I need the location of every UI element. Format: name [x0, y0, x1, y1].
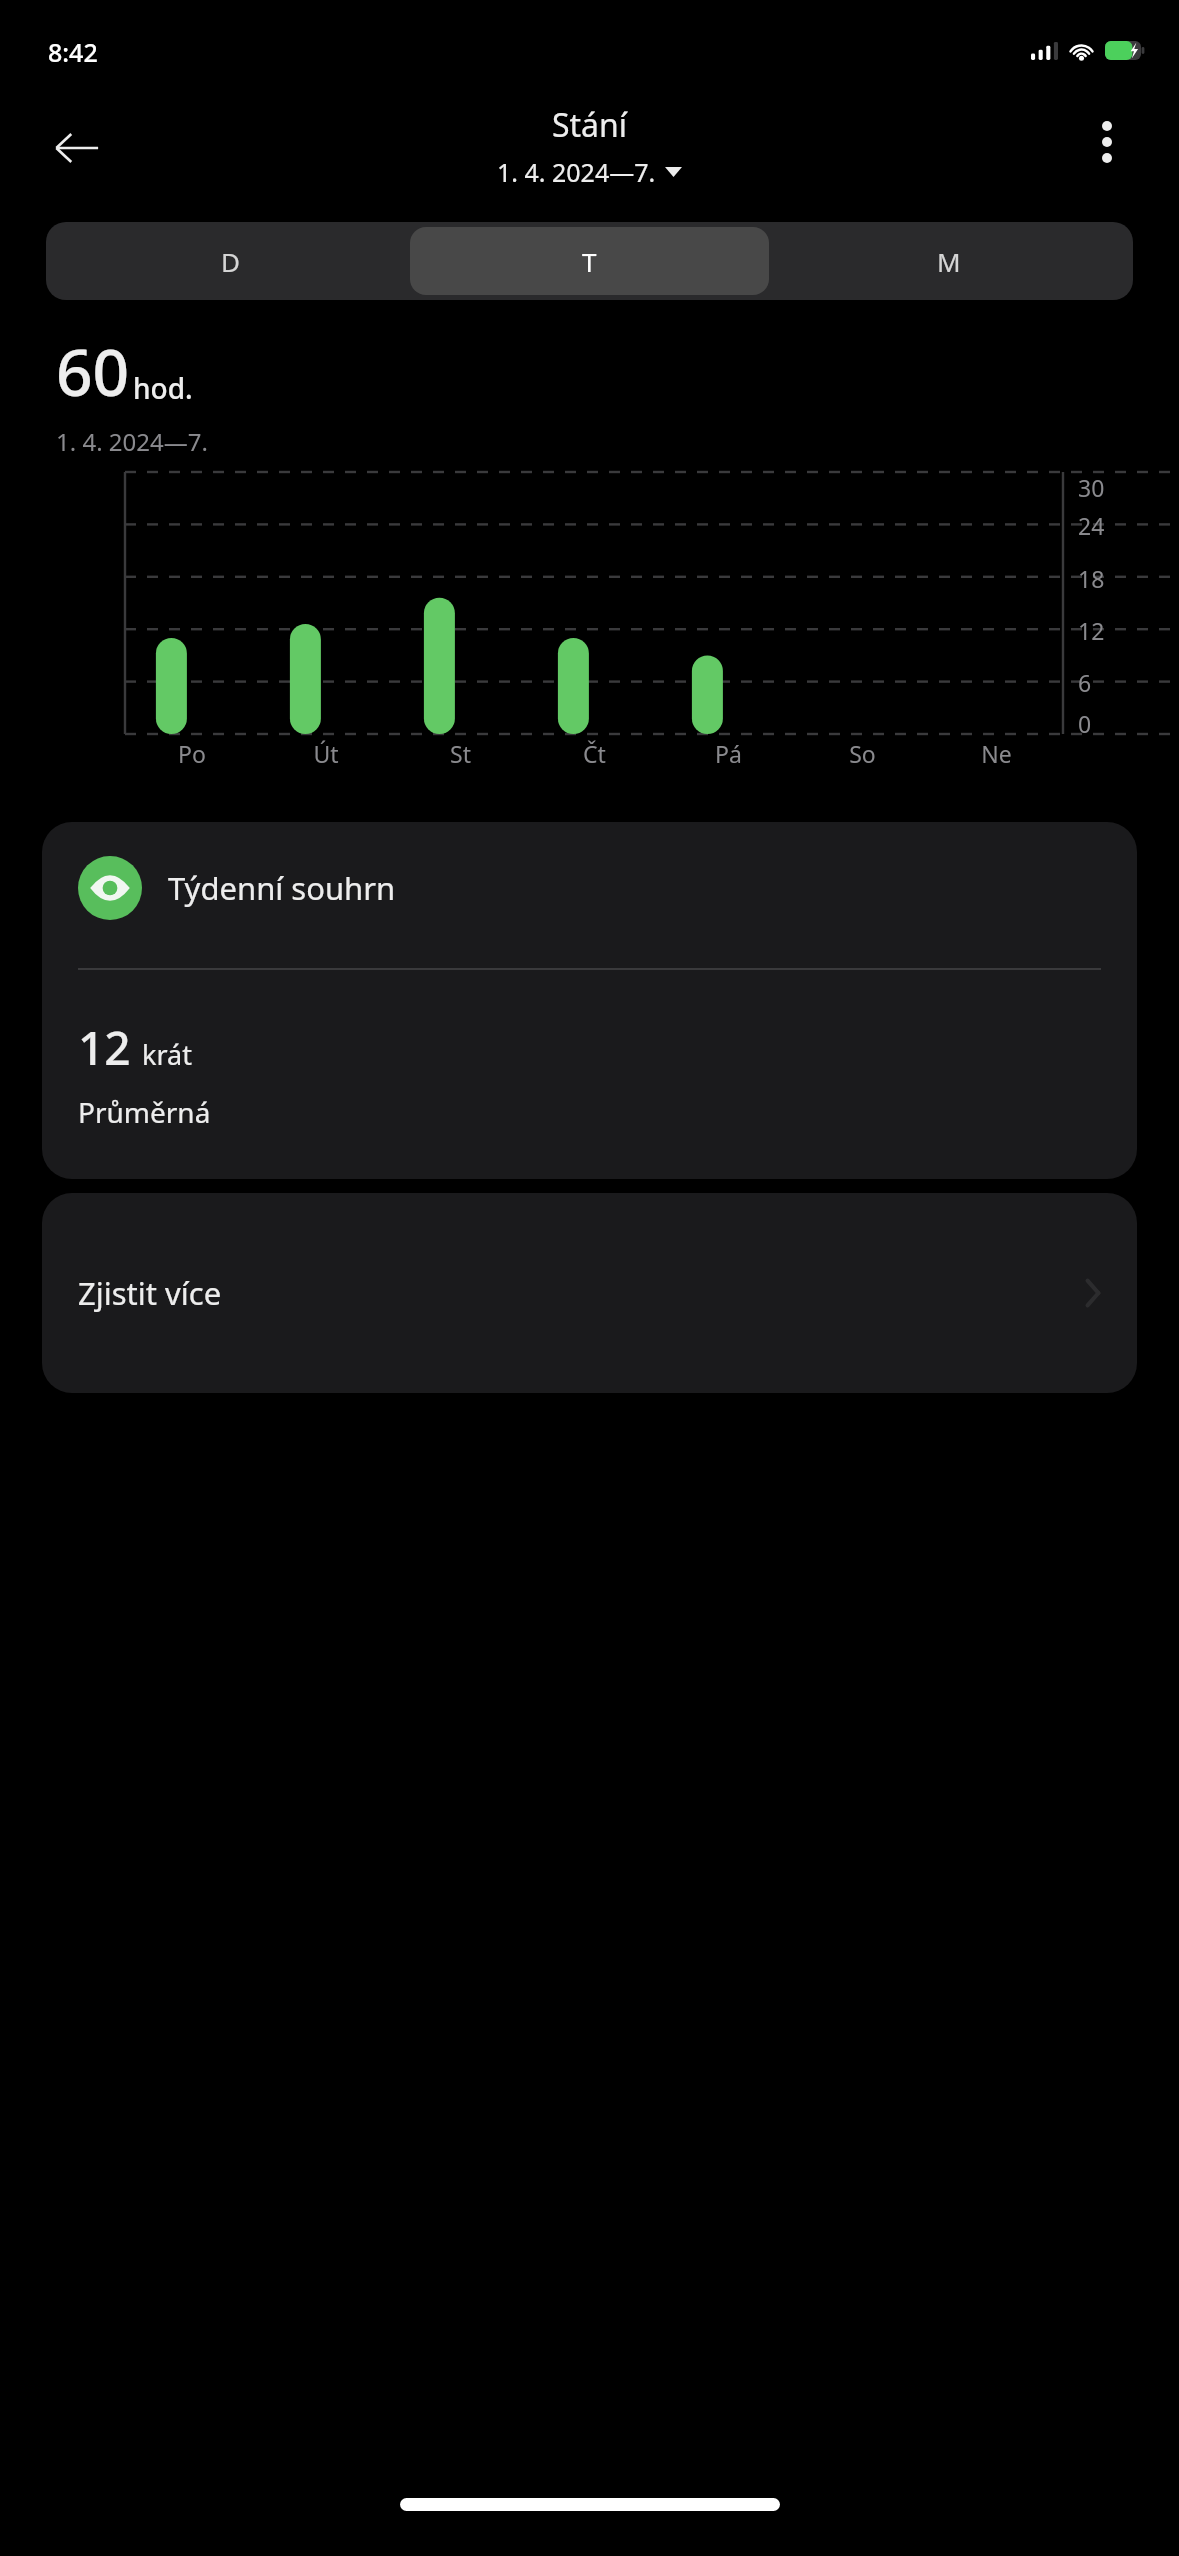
button[interactable]: Back	[44, 115, 110, 181]
staticText: 60	[56, 328, 130, 415]
staticText: 30	[1078, 472, 1105, 499]
staticText: St	[450, 738, 471, 769]
staticText: Po	[178, 738, 206, 769]
staticText: 1. 4. 2024—7.	[56, 425, 208, 458]
button[interactable]: M	[769, 227, 1128, 295]
staticText: Ne	[981, 738, 1012, 769]
staticText: Průměrná	[78, 1093, 211, 1131]
staticText: Stání	[552, 103, 628, 147]
staticText: M	[937, 244, 961, 279]
staticText: Čt	[583, 738, 606, 769]
button[interactable]: 1. 4. 2024—7.	[497, 155, 682, 189]
staticText: 18	[1078, 563, 1105, 594]
staticText: D	[221, 244, 240, 279]
staticText: Út	[313, 738, 339, 769]
staticText: 0	[1078, 708, 1092, 734]
staticText: So	[849, 738, 876, 769]
button[interactable]: T	[410, 227, 769, 295]
button[interactable]: Zjistit více	[42, 1193, 1137, 1393]
staticText: 12	[1078, 615, 1105, 646]
staticText: 6	[1078, 667, 1092, 698]
staticText: 1. 4. 2024—7.	[497, 155, 656, 189]
staticText: Týdenní souhrn	[168, 867, 396, 909]
staticText: Zjistit více	[78, 1272, 222, 1314]
staticText: Pá	[715, 738, 742, 769]
staticText: hod.	[133, 369, 193, 407]
button[interactable]: Týdenní souhrn	[42, 822, 1137, 1179]
staticText: krát	[142, 1036, 192, 1073]
staticText: 12	[78, 1016, 131, 1079]
button[interactable]: More options	[1077, 112, 1137, 172]
staticText: 24	[1078, 510, 1105, 541]
staticText: 8:42	[48, 35, 98, 69]
staticText: T	[582, 244, 597, 279]
button[interactable]: D	[51, 227, 410, 295]
